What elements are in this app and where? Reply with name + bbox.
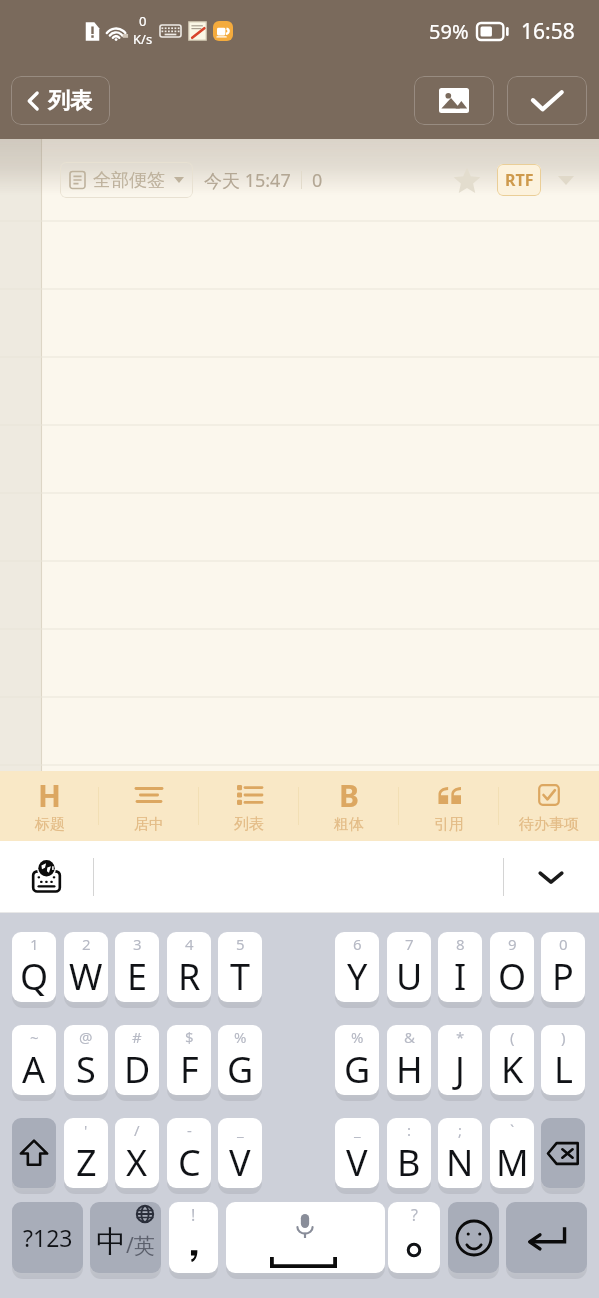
button[interactable]: _	[335, 1118, 379, 1188]
staticText: C	[178, 1138, 201, 1187]
button[interactable]: %	[335, 1025, 379, 1095]
button[interactable]: -	[167, 1118, 211, 1188]
button[interactable]: Hide keyboard	[527, 853, 575, 901]
staticText: T	[230, 952, 251, 1001]
button[interactable]: Space	[226, 1202, 385, 1273]
button[interactable]: &	[387, 1025, 431, 1095]
staticText: 引用	[434, 815, 464, 834]
button[interactable]: 6	[335, 932, 379, 1002]
button[interactable]: '	[64, 1118, 108, 1188]
staticText: R	[178, 952, 201, 1001]
staticText: H	[396, 1045, 423, 1094]
staticText: B	[397, 1138, 421, 1187]
staticText: /英	[126, 1231, 155, 1260]
staticText: ?	[411, 1204, 418, 1226]
staticText: N	[446, 1138, 474, 1187]
staticText: J	[455, 1045, 465, 1094]
button[interactable]: 中	[90, 1202, 161, 1273]
button[interactable]: Enter	[506, 1202, 587, 1273]
staticText: U	[396, 952, 423, 1001]
button[interactable]: H	[0, 771, 99, 841]
button[interactable]: *	[438, 1025, 482, 1095]
button[interactable]: %	[218, 1025, 262, 1095]
button[interactable]: 列表	[11, 76, 110, 125]
button[interactable]: RTF	[497, 164, 541, 196]
staticText: D	[124, 1045, 151, 1094]
staticText: K/s	[133, 30, 153, 48]
button[interactable]: 列表	[199, 771, 299, 841]
button[interactable]: ~	[12, 1025, 56, 1095]
button[interactable]: Backspace	[541, 1118, 585, 1188]
staticText: 今天 15:47	[204, 168, 291, 193]
button[interactable]: Emoji	[448, 1202, 499, 1273]
staticText: :	[407, 1120, 412, 1140]
staticText: V	[229, 1138, 251, 1187]
button[interactable]: /	[115, 1118, 159, 1188]
button[interactable]: 1	[12, 932, 56, 1002]
staticText: $	[185, 1027, 194, 1047]
staticText: G	[227, 1045, 254, 1094]
button[interactable]: 0	[541, 932, 585, 1002]
staticText: H	[38, 775, 61, 815]
staticText: 59%	[429, 18, 469, 45]
staticText: K	[501, 1045, 524, 1094]
button[interactable]: ?	[388, 1202, 440, 1273]
staticText: %	[234, 1027, 247, 1047]
button[interactable]: 2	[64, 932, 108, 1002]
button[interactable]: _	[218, 1118, 262, 1188]
staticText: 6	[353, 934, 362, 954]
staticText: 中	[96, 1223, 126, 1261]
staticText: /	[134, 1120, 140, 1140]
staticText: 9	[508, 934, 517, 954]
staticText: 0	[139, 12, 147, 30]
button[interactable]: 居中	[99, 771, 199, 841]
button[interactable]: Done	[507, 76, 587, 125]
staticText: Z	[76, 1138, 97, 1187]
staticText: #	[132, 1027, 142, 1047]
button[interactable]: ;	[438, 1118, 482, 1188]
staticText: `	[510, 1120, 515, 1140]
staticText: _	[354, 1120, 361, 1140]
staticText: 7	[405, 934, 414, 954]
button[interactable]: 3	[115, 932, 159, 1002]
staticText: @	[79, 1027, 93, 1047]
staticText: 列表	[234, 815, 264, 834]
staticText: )	[561, 1027, 566, 1047]
button[interactable]: Insert image	[414, 76, 494, 125]
staticText: S	[76, 1045, 96, 1094]
button[interactable]: )	[541, 1025, 585, 1095]
staticText: 0	[312, 168, 323, 193]
button[interactable]: Favourite	[445, 158, 489, 202]
button[interactable]: Switch input method	[22, 853, 70, 901]
staticText: X	[126, 1138, 148, 1187]
button[interactable]: 7	[387, 932, 431, 1002]
button[interactable]: 9	[490, 932, 534, 1002]
staticText: 全部便签	[93, 169, 165, 192]
button[interactable]: 5	[218, 932, 262, 1002]
button[interactable]: Shift	[12, 1118, 56, 1188]
staticText: 粗体	[334, 815, 364, 834]
button[interactable]: !	[169, 1202, 218, 1273]
button[interactable]: 待办事项	[499, 771, 599, 841]
staticText: ~	[30, 1027, 39, 1047]
staticText: 4	[185, 934, 194, 954]
button[interactable]: (	[490, 1025, 534, 1095]
button[interactable]: 引用	[399, 771, 499, 841]
staticText: Y	[347, 952, 368, 1001]
button[interactable]: @	[64, 1025, 108, 1095]
staticText: -	[187, 1120, 192, 1140]
staticText: !	[191, 1204, 196, 1226]
staticText: ;	[458, 1120, 463, 1140]
button[interactable]: 4	[167, 932, 211, 1002]
button[interactable]: ?123	[12, 1202, 83, 1273]
button[interactable]: 全部便签	[60, 162, 193, 198]
button[interactable]: `	[490, 1118, 534, 1188]
button[interactable]: :	[387, 1118, 431, 1188]
button[interactable]: B	[299, 771, 399, 841]
button[interactable]: 8	[438, 932, 482, 1002]
staticText: 居中	[134, 815, 164, 834]
staticText: '	[84, 1120, 88, 1140]
button[interactable]: $	[167, 1025, 211, 1095]
button[interactable]: #	[115, 1025, 159, 1095]
button[interactable]: More	[547, 161, 585, 199]
